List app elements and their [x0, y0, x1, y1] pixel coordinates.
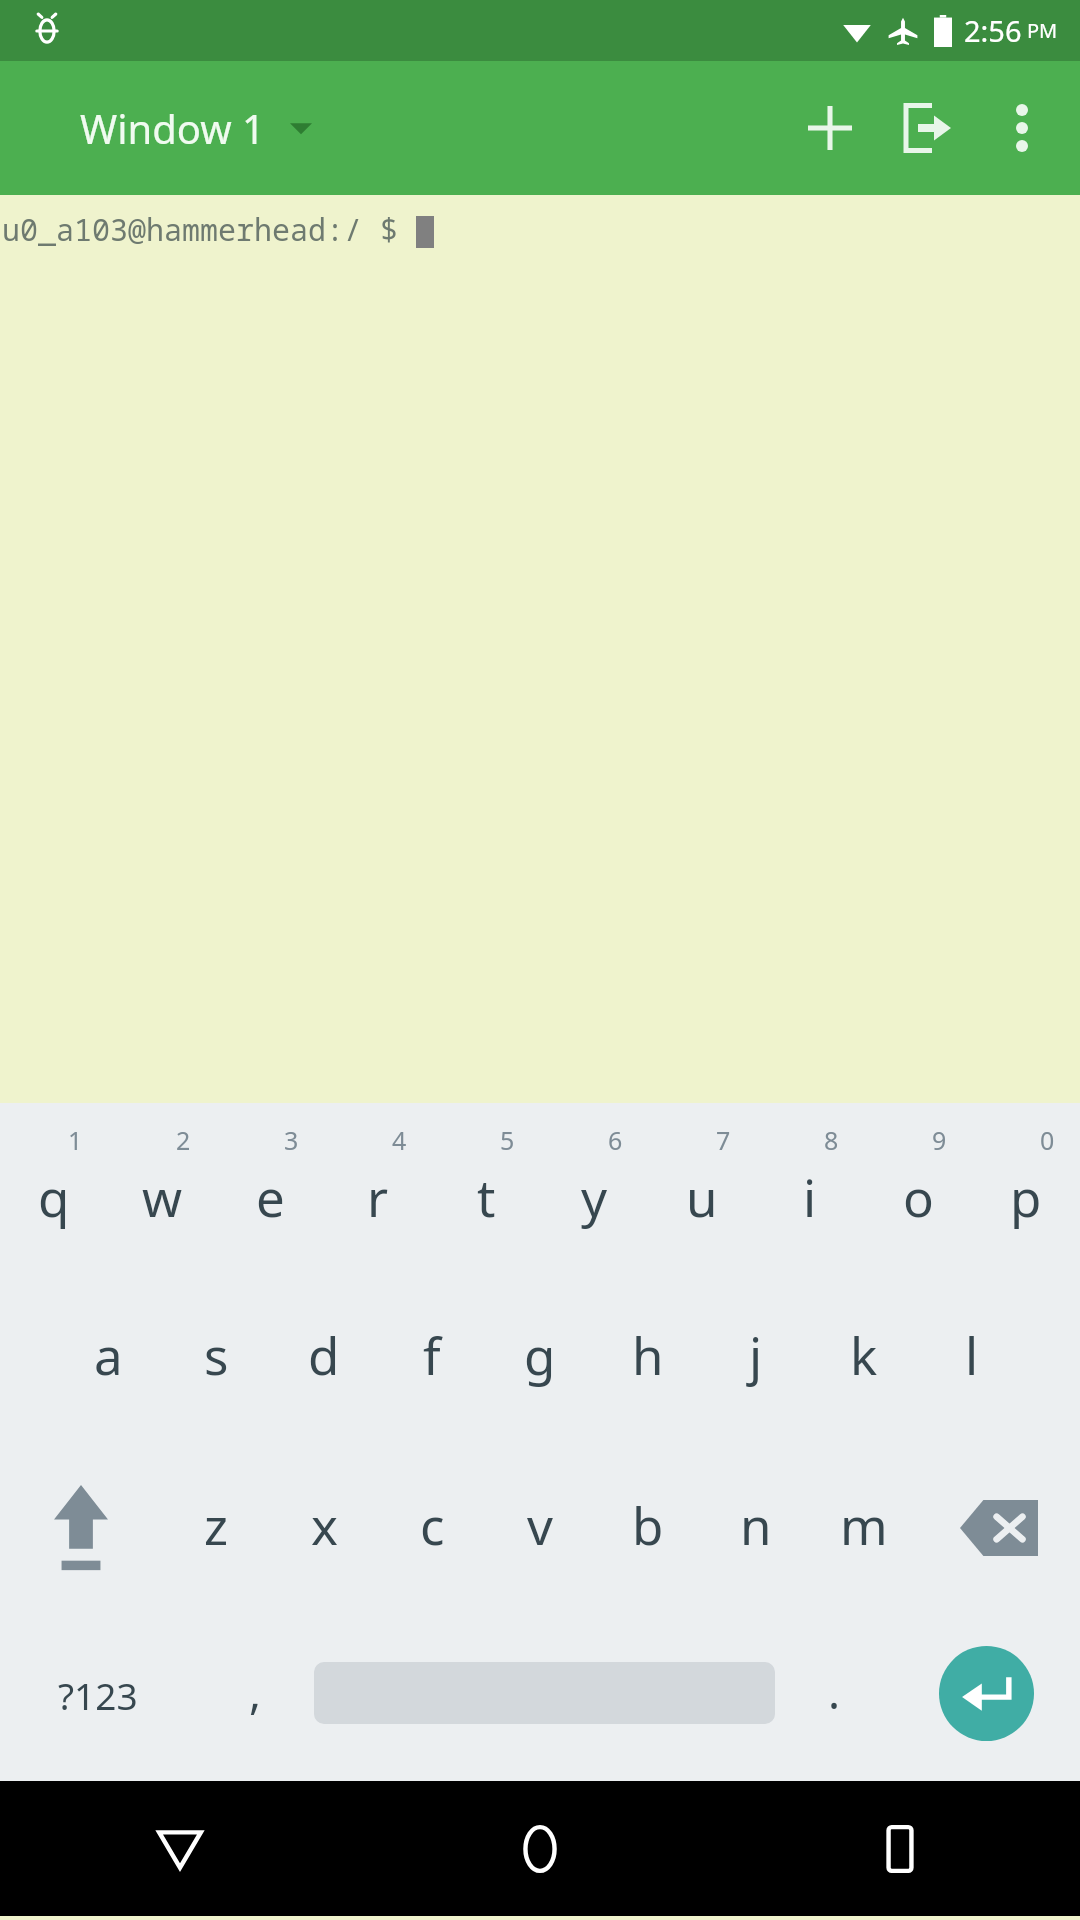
staticText: m — [840, 1490, 888, 1559]
button[interactable]: 2 — [108, 1103, 216, 1273]
button[interactable]: Back — [0, 1781, 360, 1916]
staticText: Window 1 — [80, 101, 265, 155]
staticText: ?123 — [58, 1670, 138, 1720]
button[interactable]: , — [196, 1613, 314, 1781]
button[interactable]: 1 — [0, 1103, 108, 1273]
staticText: j — [749, 1320, 763, 1389]
button[interactable]: ?123 — [0, 1613, 196, 1781]
button[interactable]: f — [378, 1273, 486, 1443]
button[interactable]: 4 — [324, 1103, 432, 1273]
button[interactable]: 5 — [432, 1103, 540, 1273]
button[interactable]: 6 — [540, 1103, 648, 1273]
staticText: 1 — [68, 1123, 83, 1157]
button[interactable]: Backspace — [918, 1443, 1080, 1613]
staticText: w — [142, 1162, 183, 1231]
staticText: h — [632, 1320, 664, 1389]
button[interactable]: k — [810, 1273, 918, 1443]
button[interactable]: s — [162, 1273, 270, 1443]
button[interactable]: Window 1 — [80, 101, 312, 155]
button[interactable]: j — [702, 1273, 810, 1443]
button[interactable]: a — [54, 1273, 162, 1443]
button[interactable] — [314, 1613, 775, 1781]
staticText: a — [94, 1320, 123, 1389]
button[interactable]: 7 — [648, 1103, 756, 1273]
button[interactable]: More options — [974, 80, 1070, 176]
button[interactable]: h — [594, 1273, 702, 1443]
button[interactable]: . — [775, 1613, 893, 1781]
staticText: 2 — [176, 1123, 191, 1157]
staticText: k — [850, 1320, 878, 1389]
staticText: o — [903, 1162, 934, 1231]
staticText: 3 — [284, 1123, 299, 1157]
staticText: PM — [1027, 17, 1058, 44]
button[interactable]: m — [810, 1443, 918, 1613]
button[interactable]: New window — [782, 80, 878, 176]
staticText: 7 — [716, 1123, 731, 1157]
button[interactable]: g — [486, 1273, 594, 1443]
staticText: 2:56 — [964, 11, 1022, 50]
staticText: l — [965, 1320, 979, 1389]
button[interactable]: x — [270, 1443, 378, 1613]
staticText: p — [1010, 1162, 1042, 1231]
button[interactable]: Enter — [893, 1613, 1080, 1781]
staticText: i — [803, 1162, 817, 1231]
staticText: b — [632, 1490, 664, 1559]
button[interactable]: Exit — [878, 80, 974, 176]
button[interactable]: Recents — [720, 1781, 1080, 1916]
staticText: e — [256, 1162, 285, 1231]
button[interactable]: z — [162, 1443, 270, 1613]
staticText: g — [524, 1320, 556, 1389]
button[interactable]: d — [270, 1273, 378, 1443]
button[interactable]: 9 — [864, 1103, 972, 1273]
staticText: t — [477, 1162, 496, 1231]
button[interactable]: 0 — [972, 1103, 1080, 1273]
staticText: . — [828, 1661, 841, 1722]
staticText: 8 — [824, 1123, 839, 1157]
button[interactable]: b — [594, 1443, 702, 1613]
staticText: 6 — [608, 1123, 623, 1157]
button[interactable]: u0_a103@hammerhead:/ $ — [0, 195, 1080, 1103]
staticText: d — [308, 1320, 340, 1389]
staticText: v — [527, 1490, 553, 1559]
staticText: z — [204, 1490, 228, 1559]
staticText: q — [38, 1162, 70, 1231]
staticText: s — [204, 1320, 229, 1389]
staticText: 5 — [500, 1123, 515, 1157]
staticText: r — [367, 1162, 389, 1231]
button[interactable]: l — [918, 1273, 1026, 1443]
staticText: 9 — [932, 1123, 947, 1157]
button[interactable]: c — [378, 1443, 486, 1613]
staticText: c — [420, 1490, 445, 1559]
staticText: 0 — [1040, 1123, 1055, 1157]
staticText: , — [249, 1661, 262, 1722]
button[interactable]: 8 — [756, 1103, 864, 1273]
staticText: u0_a103@hammerhead:/ $ — [2, 209, 416, 250]
button[interactable]: Home — [360, 1781, 720, 1916]
button[interactable]: Shift — [0, 1443, 162, 1613]
staticText: y — [581, 1162, 608, 1231]
button[interactable]: n — [702, 1443, 810, 1613]
staticText: 4 — [392, 1123, 407, 1157]
staticText: u — [686, 1162, 718, 1231]
staticText: n — [740, 1490, 772, 1559]
button[interactable]: 3 — [216, 1103, 324, 1273]
button[interactable]: v — [486, 1443, 594, 1613]
staticText: x — [311, 1490, 338, 1559]
staticText: f — [423, 1320, 441, 1389]
